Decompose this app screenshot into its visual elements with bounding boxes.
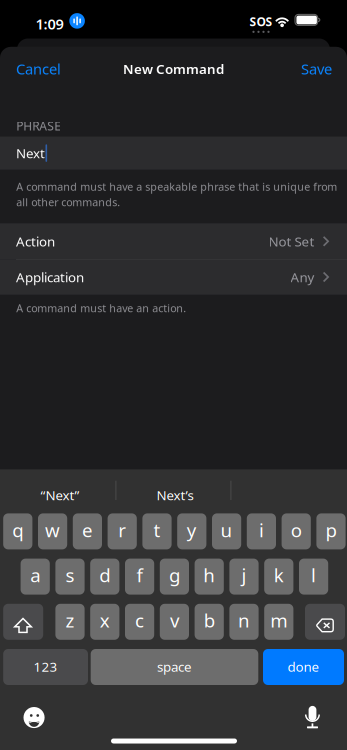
staticText: l — [311, 563, 316, 587]
staticText: u — [221, 517, 233, 542]
button[interactable]: a — [21, 559, 50, 595]
button[interactable]: “Next” — [38, 484, 82, 506]
button[interactable]: s — [55, 559, 85, 595]
button[interactable]: i — [247, 513, 276, 549]
staticText: h — [203, 563, 215, 587]
staticText: New Command — [123, 60, 224, 78]
staticText: 1:09 — [35, 14, 63, 33]
staticText: SOS — [249, 14, 272, 29]
staticText: g — [169, 563, 180, 587]
button[interactable]: y — [177, 513, 206, 549]
staticText: a — [30, 563, 40, 587]
staticText: 123 — [34, 658, 58, 675]
button[interactable]: q — [3, 513, 32, 549]
button[interactable]: k — [264, 559, 293, 595]
staticText: o — [291, 517, 302, 542]
button[interactable]: c — [125, 604, 154, 640]
button[interactable]: Application — [0, 259, 347, 295]
staticText: Any — [290, 268, 314, 286]
button[interactable]: o — [282, 513, 311, 549]
button[interactable]: Action — [0, 223, 347, 259]
button[interactable]: 123 — [3, 649, 88, 685]
staticText: Next’s — [156, 486, 193, 504]
staticText: Next — [16, 144, 45, 162]
staticText: Application — [16, 268, 84, 286]
staticText: t — [153, 517, 160, 542]
staticText: p — [325, 517, 336, 542]
staticText: i — [259, 517, 264, 542]
button[interactable]: z — [55, 604, 85, 640]
staticText: q — [12, 517, 23, 542]
button[interactable]: Dictate — [305, 706, 320, 729]
button[interactable]: v — [160, 604, 189, 640]
button[interactable]: Emoji — [23, 707, 45, 728]
staticText: d — [99, 563, 110, 587]
staticText: e — [82, 517, 93, 542]
staticText: m — [270, 608, 287, 633]
button[interactable]: n — [229, 604, 259, 640]
button[interactable]: r — [108, 513, 137, 549]
button[interactable]: m — [264, 604, 293, 640]
button[interactable]: e — [73, 513, 102, 549]
staticText: f — [137, 563, 143, 587]
staticText: A command must have an action. — [16, 301, 186, 315]
staticText: y — [187, 517, 197, 542]
button[interactable]: Next’s — [154, 484, 195, 506]
staticText: x — [100, 608, 110, 633]
button[interactable]: Shift — [3, 604, 43, 640]
button[interactable]: w — [38, 513, 67, 549]
staticText: z — [65, 608, 74, 633]
staticText: A command must have a speakable phrase t… — [16, 179, 337, 194]
button[interactable]: Delete — [305, 604, 345, 640]
button[interactable]: u — [212, 513, 241, 549]
staticText: b — [204, 608, 215, 633]
button[interactable]: h — [195, 559, 224, 595]
button[interactable]: j — [229, 559, 259, 595]
staticText: Save — [301, 59, 332, 79]
staticText: v — [170, 608, 179, 633]
staticText: k — [274, 563, 284, 587]
staticText: j — [241, 563, 246, 587]
button[interactable]: b — [195, 604, 224, 640]
staticText: Cancel — [16, 59, 61, 79]
staticText: “Next” — [40, 486, 79, 504]
button[interactable]: d — [90, 559, 119, 595]
button[interactable]: done — [263, 649, 344, 685]
button[interactable]: space — [91, 649, 258, 685]
button[interactable]: p — [316, 513, 346, 549]
staticText: s — [65, 563, 74, 587]
staticText: all other commands. — [16, 195, 120, 209]
staticText: w — [45, 517, 60, 542]
button[interactable]: f — [125, 559, 154, 595]
staticText: Not Set — [268, 232, 314, 250]
button[interactable]: l — [299, 559, 328, 595]
staticText: n — [238, 608, 250, 633]
button[interactable]: Cancel — [6, 51, 72, 87]
staticText: Action — [16, 232, 55, 250]
staticText: r — [118, 517, 126, 542]
button[interactable]: t — [142, 513, 172, 549]
button[interactable]: x — [90, 604, 119, 640]
staticText: c — [135, 608, 144, 633]
button[interactable]: Save — [288, 51, 344, 87]
staticText: PHRASE — [16, 118, 61, 134]
staticText: done — [287, 658, 319, 675]
staticText: space — [157, 658, 192, 675]
button[interactable]: g — [160, 559, 189, 595]
